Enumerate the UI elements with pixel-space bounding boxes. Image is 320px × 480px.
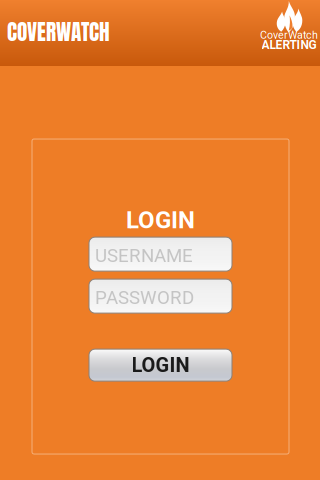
button[interactable]: USERNAME xyxy=(89,237,232,271)
staticText: CoverWatch xyxy=(260,29,318,41)
staticText: LOGIN xyxy=(126,206,195,234)
staticText: PASSWORD xyxy=(95,287,194,309)
staticText: LOGIN xyxy=(131,353,189,377)
staticText: USERNAME xyxy=(95,245,193,267)
staticText: ALERTING xyxy=(261,38,316,52)
staticText: COVERWATCH xyxy=(7,16,110,48)
button[interactable]: LOGIN xyxy=(89,349,232,381)
button[interactable]: PASSWORD xyxy=(89,279,232,313)
